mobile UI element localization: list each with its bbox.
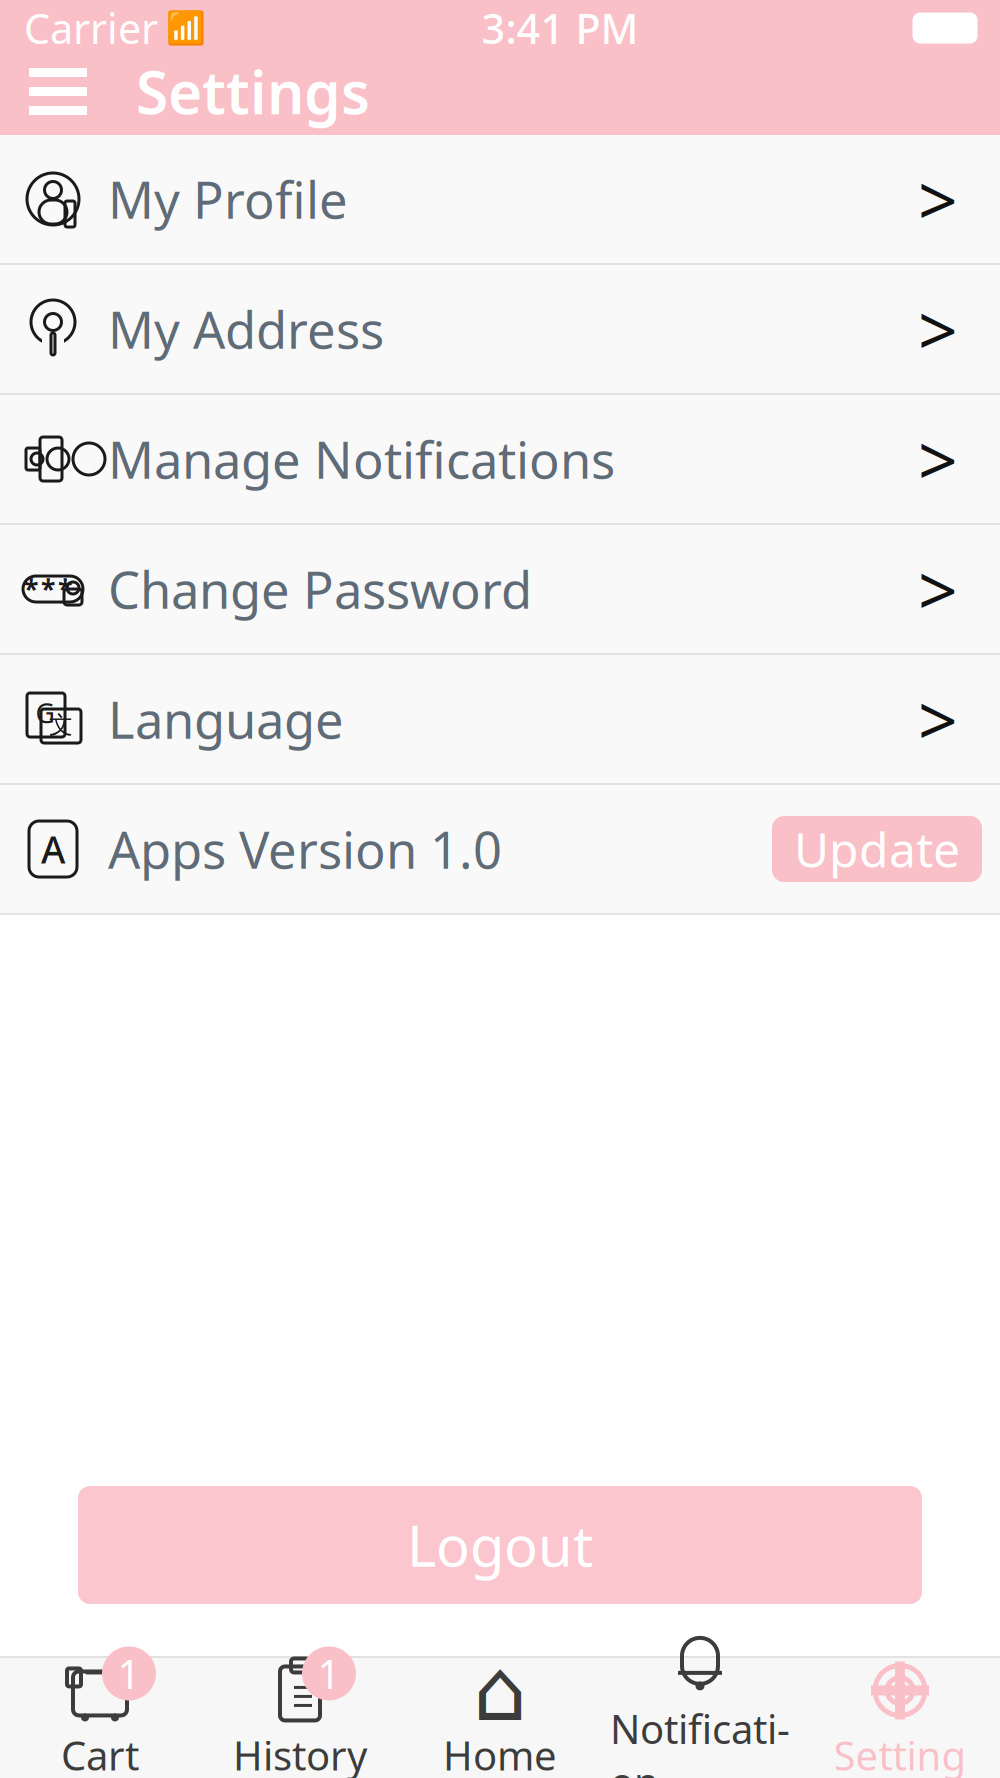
staticText: Update (794, 817, 960, 881)
button[interactable]: My Profile (0, 135, 1000, 263)
button[interactable]: 1 (0, 1659, 200, 1777)
staticText: * (41, 571, 55, 607)
staticText: 1 (317, 1647, 340, 1700)
staticText: History (233, 1728, 367, 1778)
staticText: 文 (49, 710, 73, 740)
staticText: > (918, 543, 958, 635)
button[interactable]: Menu (18, 56, 98, 126)
button[interactable]: 1 (200, 1659, 400, 1777)
staticText: My Address (108, 295, 384, 363)
staticText: Logout (407, 1508, 593, 1582)
staticText: A (41, 824, 65, 874)
staticText: Language (108, 685, 344, 753)
button[interactable]: ⌂ (400, 1659, 600, 1777)
staticText: * (24, 571, 38, 607)
staticText: > (918, 673, 958, 765)
staticText: 📶 (166, 10, 206, 46)
staticText: Settings (136, 52, 370, 130)
button[interactable]: Setting (800, 1659, 1000, 1777)
staticText: G (35, 695, 54, 731)
button[interactable]: * (0, 525, 1000, 653)
button[interactable]: Manage Notifications (0, 395, 1000, 523)
staticText: Home (443, 1728, 557, 1778)
staticText: Cart (61, 1728, 139, 1778)
button[interactable]: Notification (600, 1659, 800, 1777)
staticText: Setting (833, 1728, 966, 1778)
staticText: * (58, 571, 72, 607)
staticText: ⌂ (473, 1642, 527, 1739)
staticText: > (918, 413, 958, 505)
staticText: Manage Notifications (108, 425, 615, 493)
staticText: Notification (610, 1702, 790, 1778)
button[interactable]: My Address (0, 265, 1000, 393)
staticText: My Profile (108, 165, 348, 233)
staticText: Change Password (108, 555, 532, 623)
staticText: 1 (117, 1647, 140, 1700)
staticText: > (918, 153, 958, 245)
staticText: 3:41 PM (481, 1, 638, 55)
button[interactable]: Logout (78, 1486, 922, 1604)
staticText: Carrier (24, 1, 158, 55)
button[interactable]: Update (772, 816, 982, 882)
staticText: Apps Version 1.0 (108, 815, 502, 883)
button[interactable]: G (0, 655, 1000, 783)
staticText: > (918, 283, 958, 375)
